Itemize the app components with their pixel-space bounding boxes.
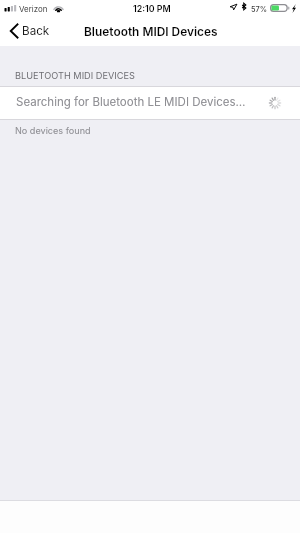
staticText: Back xyxy=(22,24,50,38)
button[interactable]: Back xyxy=(4,20,56,46)
staticText: Verizon xyxy=(19,4,48,14)
staticText: No devices found xyxy=(15,125,91,136)
staticText: BLUETOOTH MIDI DEVICES xyxy=(15,70,135,81)
staticText: 57% xyxy=(251,5,267,14)
staticText: Bluetooth MIDI Devices xyxy=(84,24,218,38)
staticText: 12:10 PM xyxy=(133,3,171,14)
staticText: Searching for Bluetooth LE MIDI Devices… xyxy=(16,95,246,109)
button[interactable]: Searching for Bluetooth LE MIDI Devices… xyxy=(0,87,300,119)
